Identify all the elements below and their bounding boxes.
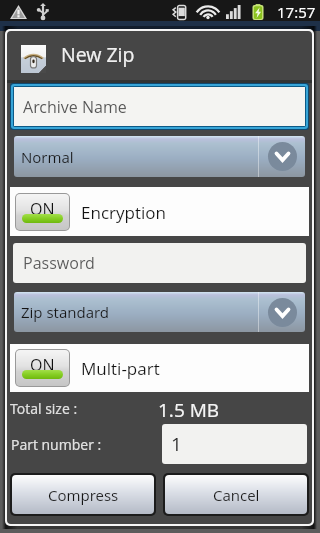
staticText: 1 <box>171 431 182 457</box>
button[interactable]: Zip standard <box>14 292 305 332</box>
button[interactable]: Password <box>13 243 306 283</box>
button[interactable]: ON <box>10 187 309 236</box>
staticText: Zip standard <box>21 302 109 322</box>
button[interactable]: Archive Name <box>14 87 305 126</box>
button[interactable]: 1 <box>162 424 307 464</box>
staticText: 1.5 MB <box>158 397 220 419</box>
button[interactable]: Compress <box>12 475 154 514</box>
staticText: Cancel <box>213 485 260 505</box>
staticText: ON <box>30 354 55 376</box>
staticText: Compress <box>48 485 119 505</box>
staticText: Archive Name <box>23 96 127 118</box>
staticText: Normal <box>21 147 74 167</box>
staticText: New Zip <box>61 41 135 68</box>
staticText: Encryption <box>81 201 166 224</box>
other: Open dropdown <box>259 136 305 177</box>
staticText: 17:57 <box>277 2 316 22</box>
other: Open dropdown <box>259 292 305 332</box>
staticText: Part number : <box>11 435 102 454</box>
button[interactable]: Cancel <box>165 475 307 514</box>
staticText: ON <box>30 198 55 220</box>
button[interactable]: ON <box>10 344 309 392</box>
staticText: Multi-part <box>81 357 160 380</box>
button[interactable]: Normal <box>14 136 305 177</box>
staticText: Password <box>23 252 95 274</box>
staticText: Total size : <box>10 399 78 418</box>
